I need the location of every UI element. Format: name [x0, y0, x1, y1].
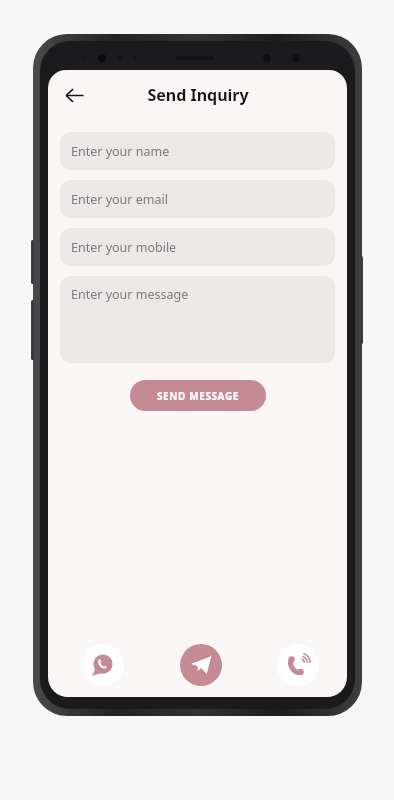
staticText: SEND MESSAGE [157, 389, 239, 403]
button[interactable]: Enter your name [60, 132, 335, 170]
button[interactable]: WhatsApp [82, 644, 124, 686]
button[interactable]: Back [56, 77, 92, 113]
button[interactable]: SEND MESSAGE [130, 380, 266, 411]
staticText: Enter your mobile [71, 239, 177, 256]
button[interactable]: Call [277, 644, 319, 686]
button[interactable]: Enter your email [60, 180, 335, 218]
staticText: Enter your message [71, 286, 189, 303]
button[interactable]: Enter your mobile [60, 228, 335, 266]
button[interactable]: Enter your message [60, 276, 335, 363]
button[interactable]: Telegram [180, 644, 222, 686]
staticText: Enter your name [71, 143, 170, 160]
staticText: Send Inquiry [147, 84, 249, 106]
staticText: Enter your email [71, 191, 168, 208]
